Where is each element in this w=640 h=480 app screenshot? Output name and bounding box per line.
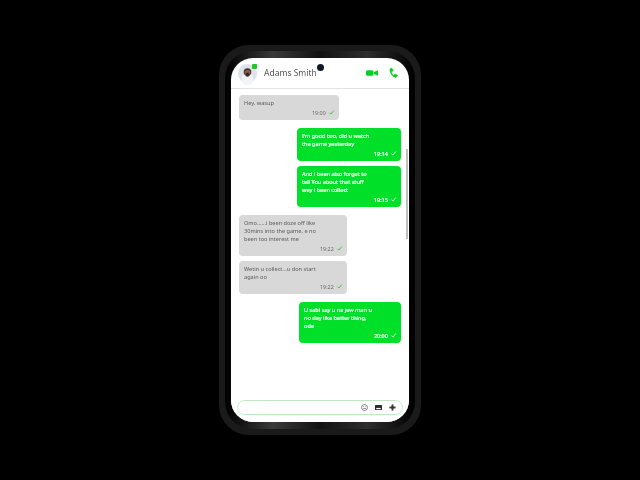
button[interactable]: Voice call <box>386 65 402 81</box>
button[interactable]: Wetin u collect...u don start again oo <box>239 261 347 294</box>
staticText: 19:22 <box>320 245 334 252</box>
staticText: And i been also forget to tell You about… <box>302 170 367 194</box>
staticText: Adams Smith <box>264 67 317 79</box>
staticText: Wetin u collect...u don start again oo <box>244 265 316 281</box>
staticText: 19:00 <box>312 109 326 116</box>
button[interactable]: U sabi say u na jew man u no dey like be… <box>299 302 401 343</box>
button[interactable]: Hey, wasup <box>239 95 339 120</box>
button[interactable]: Omo......i been doze off like 30mins int… <box>239 215 347 256</box>
staticText: 20:00 <box>374 332 388 339</box>
staticText: 19:15 <box>374 196 388 203</box>
button[interactable]: Camera <box>374 403 383 412</box>
button[interactable]: I'm good bro, did u watch the game yeste… <box>297 128 401 161</box>
button[interactable]: Attach <box>388 403 397 412</box>
staticText: Hey, wasup <box>244 99 274 107</box>
button[interactable] <box>238 64 257 83</box>
staticText: U sabi say u na jew man u no dey like be… <box>304 306 372 330</box>
button[interactable]: Emoji <box>237 400 403 415</box>
staticText: 19:22 <box>320 283 334 290</box>
button[interactable]: And i been also forget to tell You about… <box>297 166 401 207</box>
staticText: I'm good bro, did u watch the game yeste… <box>302 132 370 148</box>
staticText: Omo......i been doze off like 30mins int… <box>244 219 316 243</box>
button[interactable]: Emoji <box>360 403 369 412</box>
staticText: 19:14 <box>374 150 388 157</box>
button[interactable]: Video call <box>364 65 380 81</box>
